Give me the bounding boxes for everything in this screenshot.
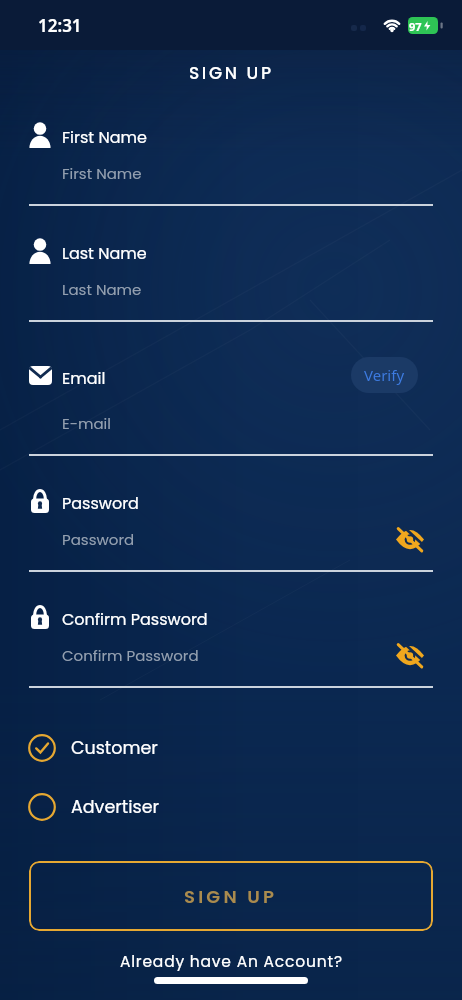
staticText: Advertiser — [71, 795, 160, 820]
staticText: First Name — [62, 163, 142, 184]
staticText: Confirm Password — [62, 645, 199, 666]
button[interactable]: SIGN UP — [29, 861, 433, 931]
staticText: 97 — [409, 19, 422, 34]
staticText: Customer — [71, 736, 158, 761]
staticText: SIGN UP — [189, 61, 274, 85]
button[interactable]: Advertiser — [28, 792, 160, 822]
staticText: Last Name — [62, 279, 142, 300]
staticText: Already have An Account? — [120, 951, 343, 973]
staticText: Email — [62, 367, 106, 389]
staticText: E-mail — [62, 413, 111, 434]
staticText: First Name — [62, 126, 147, 148]
staticText: Password — [62, 492, 139, 514]
button[interactable]: Verify — [351, 357, 418, 393]
staticText: Verify — [364, 365, 405, 385]
staticText: Password — [62, 529, 135, 550]
button[interactable]: Customer — [28, 733, 158, 763]
button[interactable] — [394, 523, 426, 555]
staticText: Confirm Password — [62, 608, 208, 630]
staticText: SIGN UP — [184, 884, 278, 909]
button[interactable]: Already have An Account? — [0, 951, 462, 973]
button[interactable] — [394, 639, 426, 671]
staticText: 12:31 — [38, 14, 82, 37]
staticText: Last Name — [62, 242, 147, 264]
